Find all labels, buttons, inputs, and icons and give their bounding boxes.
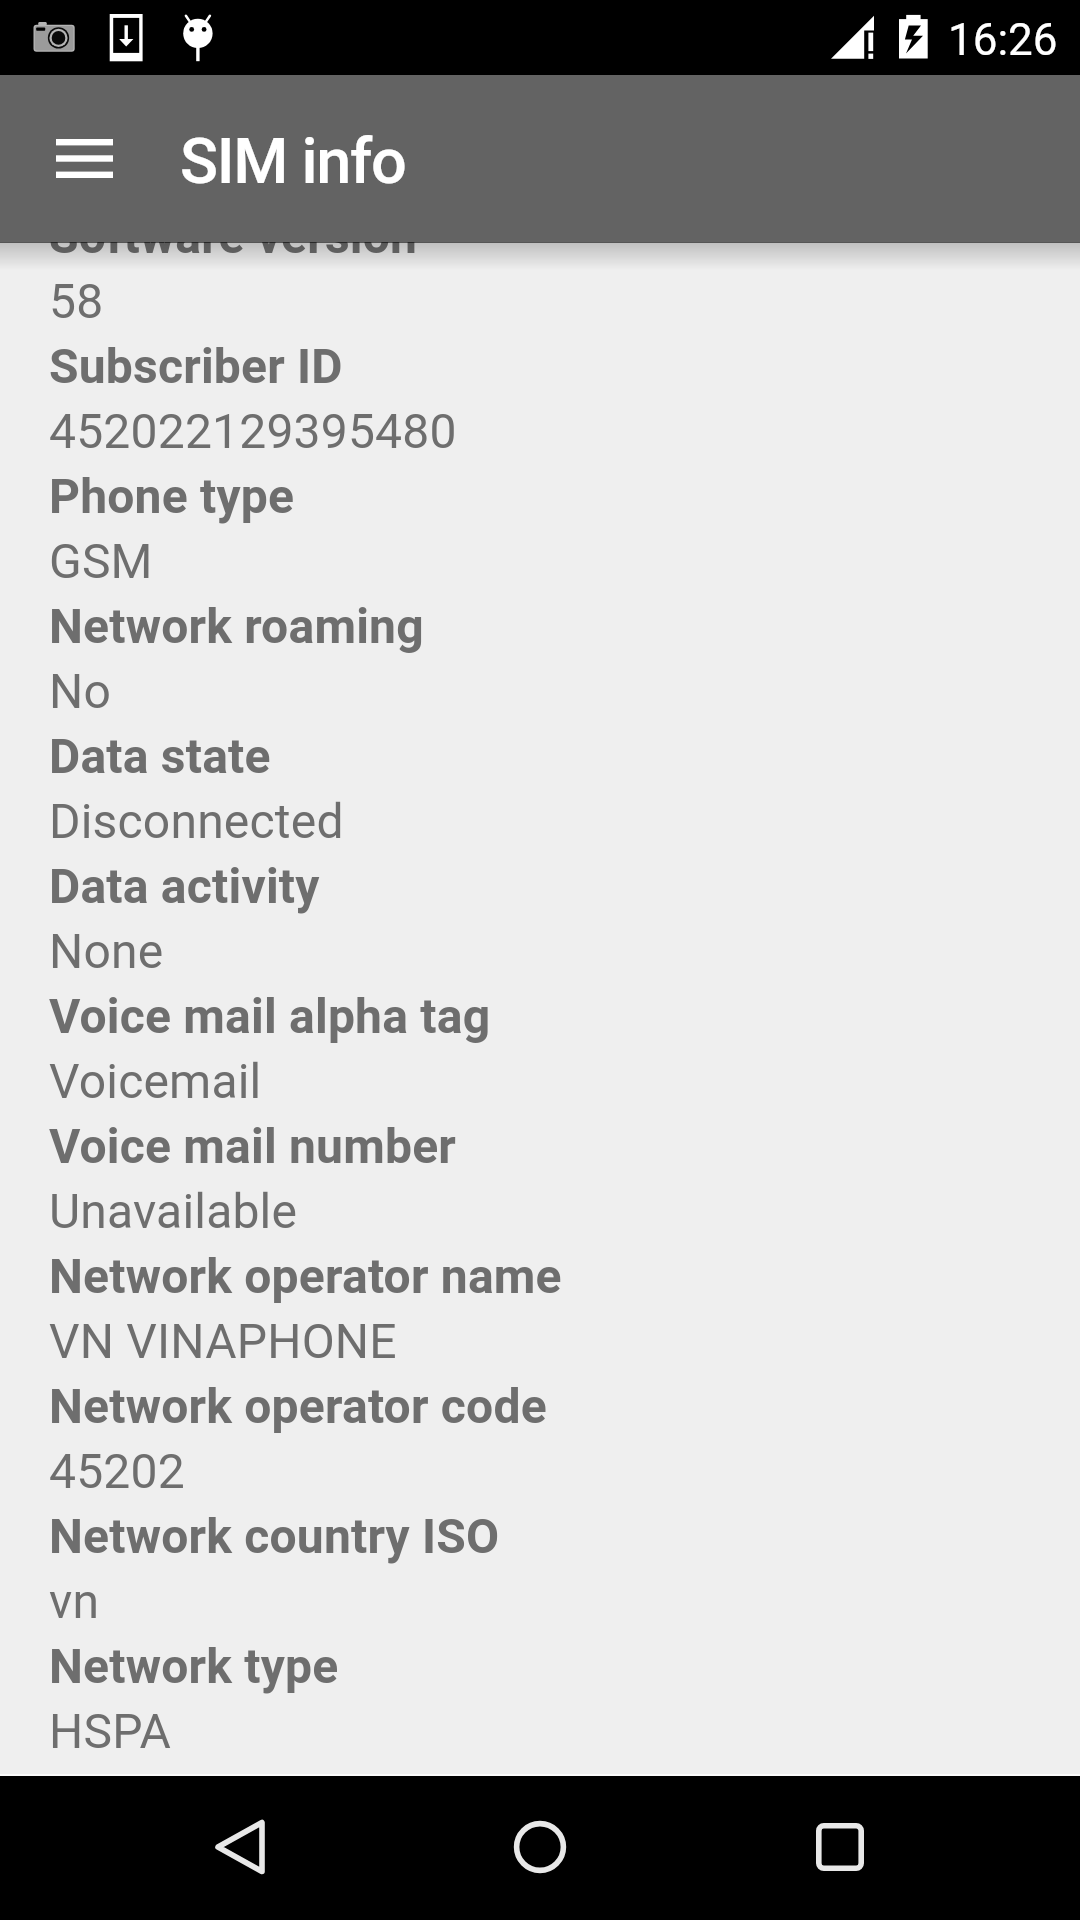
- button[interactable]: Home: [470, 1777, 610, 1917]
- staticText: 452022129395480: [49, 403, 457, 459]
- staticText: HSPA: [49, 1703, 171, 1759]
- staticText: Software version: [49, 242, 418, 264]
- button[interactable]: Network operator name: [0, 1243, 1080, 1373]
- staticText: Network country ISO: [49, 1508, 500, 1564]
- staticText: Data state: [49, 728, 271, 784]
- staticText: Network operator name: [49, 1248, 562, 1304]
- button[interactable]: Voice mail alpha tag: [0, 983, 1080, 1113]
- staticText: No: [49, 663, 112, 719]
- staticText: GSM: [49, 533, 153, 589]
- staticText: Data activity: [49, 858, 320, 914]
- staticText: Network operator code: [49, 1378, 547, 1434]
- staticText: Unavailable: [49, 1183, 298, 1239]
- staticText: VN VINAPHONE: [49, 1313, 397, 1369]
- staticText: Network type: [49, 1638, 339, 1694]
- button[interactable]: Open navigation drawer: [48, 122, 120, 194]
- staticText: 45202: [49, 1443, 185, 1499]
- staticText: Network roaming: [49, 598, 424, 654]
- button[interactable]: Network roaming: [0, 593, 1080, 723]
- button[interactable]: Recent apps: [770, 1777, 910, 1917]
- staticText: 16:26: [948, 14, 1058, 66]
- staticText: Disconnected: [49, 793, 344, 849]
- staticText: SIM info: [180, 125, 406, 199]
- button[interactable]: Network type: [0, 1633, 1080, 1763]
- staticText: Voicemail: [49, 1053, 262, 1109]
- button[interactable]: Phone type: [0, 463, 1080, 593]
- button[interactable]: Back: [170, 1777, 310, 1917]
- button[interactable]: Data state: [0, 723, 1080, 853]
- button[interactable]: Data activity: [0, 853, 1080, 983]
- button[interactable]: Subscriber ID: [0, 333, 1080, 463]
- staticText: 58: [49, 273, 104, 329]
- button[interactable]: Voice mail number: [0, 1113, 1080, 1243]
- button[interactable]: Software version: [0, 242, 1080, 333]
- staticText: Voice mail number: [49, 1118, 457, 1174]
- staticText: Subscriber ID: [49, 338, 343, 394]
- staticText: vn: [49, 1573, 100, 1629]
- staticText: Voice mail alpha tag: [49, 988, 491, 1044]
- staticText: None: [49, 923, 164, 979]
- button[interactable]: Network country ISO: [0, 1503, 1080, 1633]
- staticText: Phone type: [49, 468, 295, 524]
- button[interactable]: Network operator code: [0, 1373, 1080, 1503]
